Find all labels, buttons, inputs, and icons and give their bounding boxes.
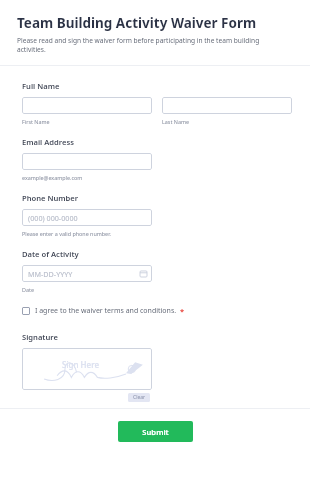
staticText: (000) 000-0000	[28, 213, 78, 223]
staticText: Sign Here	[62, 359, 100, 370]
button[interactable]: Clear	[128, 393, 150, 402]
staticText: Clear	[133, 394, 146, 401]
button[interactable]: (000) 000-0000	[22, 209, 152, 226]
staticText: Last Name	[162, 118, 189, 125]
staticText: Full Name	[22, 81, 60, 91]
staticText: Please read and sign the waiver form bef…	[17, 36, 288, 54]
staticText: MM-DD-YYYY	[28, 269, 73, 279]
staticText: I agree to the waiver terms and conditio…	[35, 306, 177, 316]
button[interactable]: Signature pad	[22, 348, 152, 390]
staticText: Submit	[142, 427, 169, 437]
staticText: Phone Number	[22, 193, 79, 203]
button[interactable]	[22, 97, 152, 114]
staticText: *	[180, 306, 185, 316]
button[interactable]: Submit	[118, 421, 193, 442]
staticText: example@example.com	[22, 174, 83, 181]
button[interactable]: I agree to the waiver terms and conditio…	[22, 306, 185, 316]
button[interactable]: MM-DD-YYYY	[22, 265, 152, 282]
staticText: Team Building Activity Waiver Form	[17, 14, 257, 32]
button[interactable]	[22, 153, 152, 170]
staticText: Please enter a valid phone number.	[22, 230, 111, 237]
staticText: Email Address	[22, 137, 74, 147]
staticText: Date of Activity	[22, 249, 79, 259]
button[interactable]	[162, 97, 292, 114]
staticText: First Name	[22, 118, 50, 125]
staticText: Signature	[22, 332, 58, 342]
staticText: Date	[22, 286, 34, 293]
